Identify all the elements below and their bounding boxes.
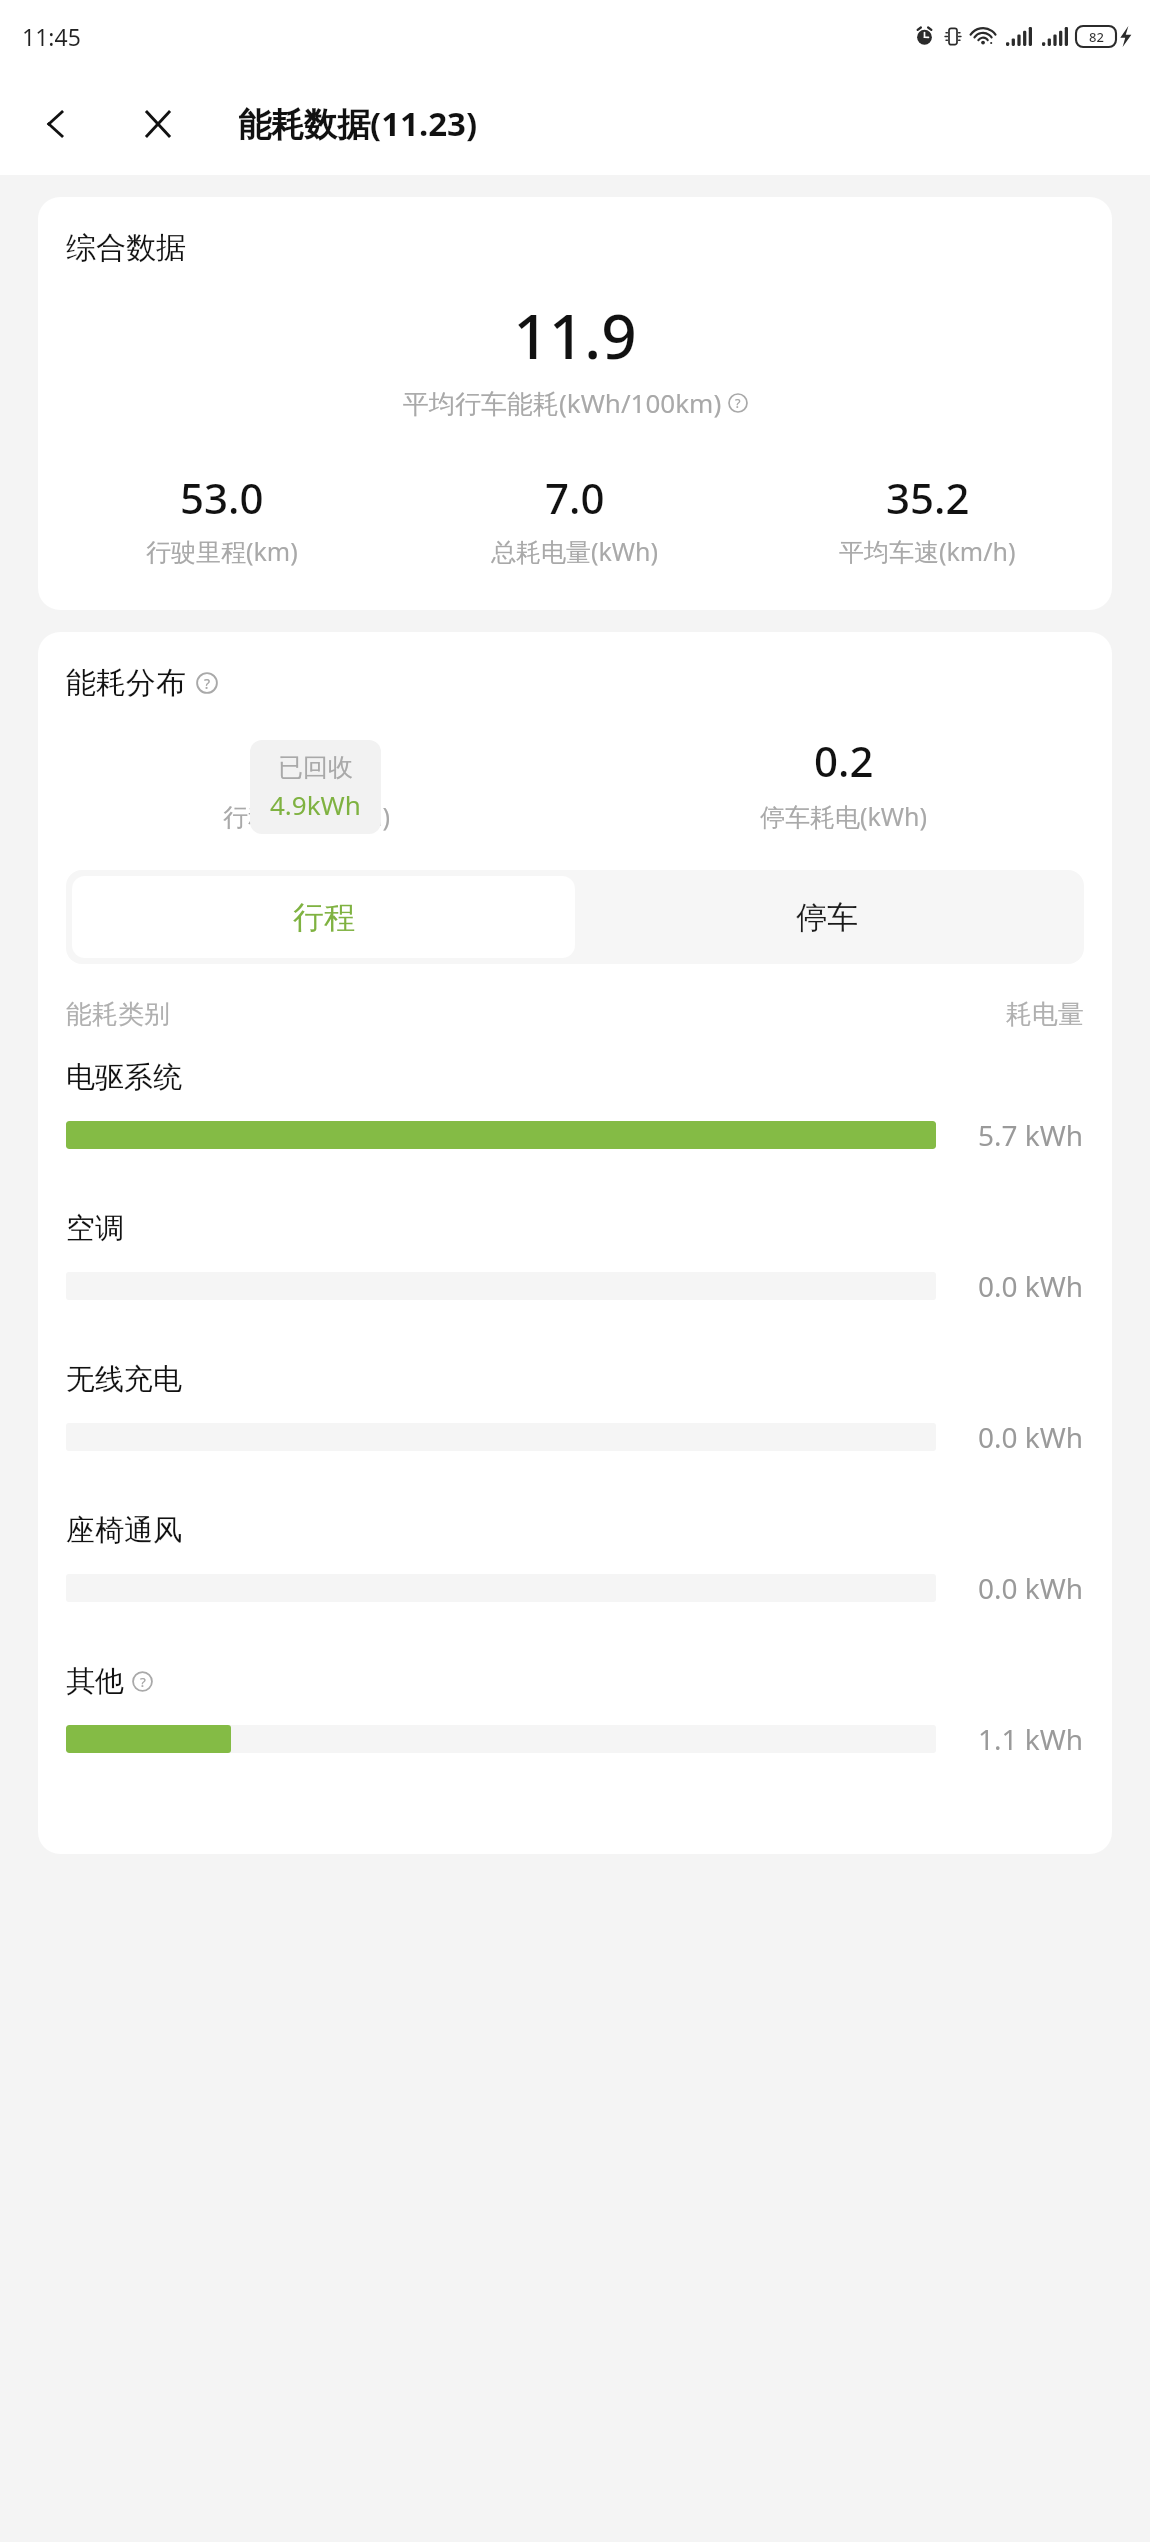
staticText: 0.2	[814, 732, 874, 789]
staticText: 11:45	[22, 21, 81, 52]
button[interactable]: 行程	[72, 876, 575, 958]
staticText: 5.7 kWh	[978, 1116, 1084, 1154]
staticText: 11.9	[38, 293, 1112, 377]
staticText: 行程耗电(kWh)	[223, 799, 391, 833]
staticText: 0.0 kWh	[978, 1418, 1084, 1456]
button[interactable]: 能耗分布	[66, 664, 218, 702]
staticText: ?	[204, 674, 211, 693]
staticText: 总耗电量(kWh)	[491, 534, 659, 568]
staticText: 已回收	[278, 752, 353, 783]
staticText: 无线充电	[66, 1361, 182, 1398]
staticText: 综合数据	[66, 229, 186, 267]
staticText: ?	[140, 1673, 146, 1691]
button[interactable]: 平均行车能耗(kWh/100km)	[38, 385, 1112, 421]
staticText: 1.1 kWh	[978, 1720, 1084, 1758]
staticText: 停车	[796, 898, 858, 937]
staticText: 能耗类别	[66, 998, 170, 1031]
staticText: 平均车速(km/h)	[839, 534, 1016, 568]
staticText: 53.0	[180, 469, 264, 526]
staticText: 0.0 kWh	[978, 1569, 1084, 1607]
staticText: 行程	[293, 898, 355, 937]
staticText: 6.8	[277, 732, 337, 789]
button[interactable]: Back	[30, 98, 82, 150]
staticText: 其他	[66, 1663, 124, 1700]
staticText: 耗电量	[1006, 998, 1084, 1031]
staticText: 停车耗电(kWh)	[760, 799, 928, 833]
staticText: 0.0 kWh	[978, 1267, 1084, 1305]
staticText: 平均行车能耗(kWh/100km)	[403, 385, 722, 421]
staticText: 能耗数据(11.23)	[238, 101, 478, 146]
staticText: 4.9kWh	[270, 787, 361, 822]
staticText: 7.0	[545, 469, 605, 526]
staticText: 82	[1089, 28, 1104, 46]
staticText: 电驱系统	[66, 1059, 182, 1096]
button[interactable]: Close	[132, 98, 184, 150]
staticText: 行驶里程(km)	[146, 534, 298, 568]
staticText: 能耗分布	[66, 664, 186, 702]
staticText: ?	[735, 395, 741, 412]
staticText: 座椅通风	[66, 1512, 182, 1549]
staticText: 35.2	[886, 469, 970, 526]
staticText: 空调	[66, 1210, 124, 1247]
button[interactable]: 停车	[575, 876, 1078, 958]
